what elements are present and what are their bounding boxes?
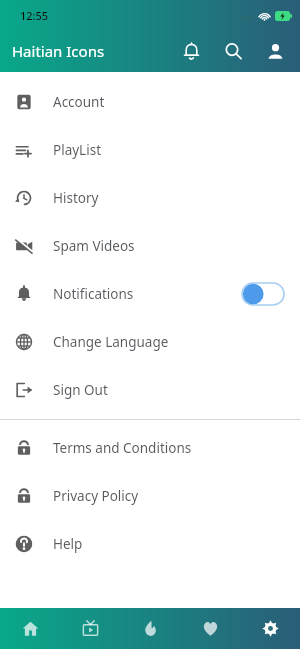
button[interactable]: Profile xyxy=(254,30,296,72)
button[interactable]: Live TV xyxy=(60,608,120,649)
staticText: Account xyxy=(53,93,292,111)
staticText: PlayList xyxy=(53,141,292,159)
button[interactable]: Help xyxy=(0,520,300,568)
staticText: Help xyxy=(53,535,292,553)
button[interactable]: Settings xyxy=(240,608,300,649)
button[interactable]: Terms and Conditions xyxy=(0,424,300,472)
button[interactable]: Privacy Policy xyxy=(0,472,300,520)
staticText: History xyxy=(53,189,292,207)
button[interactable]: Notifications xyxy=(0,270,300,318)
staticText: Terms and Conditions xyxy=(53,439,292,457)
button[interactable]: Favorites xyxy=(180,608,240,649)
staticText: Change Language xyxy=(53,333,292,351)
button[interactable]: Spam Videos xyxy=(0,222,300,270)
button[interactable]: Change Language xyxy=(0,318,300,366)
button[interactable]: Notifications xyxy=(170,30,212,72)
button[interactable]: Search xyxy=(212,30,254,72)
button[interactable]: PlayList xyxy=(0,126,300,174)
button[interactable]: History xyxy=(0,174,300,222)
button[interactable]: Account xyxy=(0,78,300,126)
button[interactable]: Notifications toggle xyxy=(242,283,284,305)
staticText: Spam Videos xyxy=(53,237,292,255)
staticText: Privacy Policy xyxy=(53,487,292,505)
button[interactable]: Home xyxy=(0,608,60,649)
staticText: Haitian Icons xyxy=(12,41,170,61)
staticText: Sign Out xyxy=(53,381,292,399)
button[interactable]: Trending xyxy=(120,608,180,649)
button[interactable]: Sign Out xyxy=(0,366,300,414)
staticText: 12:55 xyxy=(20,8,49,23)
staticText: Notifications xyxy=(53,285,242,303)
